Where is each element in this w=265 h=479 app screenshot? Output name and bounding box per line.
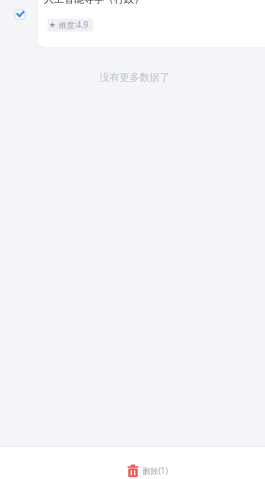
staticText: 难度:4.9	[58, 20, 88, 30]
staticText: 没有更多数据了	[99, 71, 169, 84]
button[interactable]: 已选中 人工智能导学（行政）	[15, 9, 41, 35]
staticText: 人工智能导学（行政）	[44, 0, 144, 5]
staticText: 删除(1)	[142, 466, 167, 476]
button[interactable]: 删除(1)	[0, 447, 265, 479]
